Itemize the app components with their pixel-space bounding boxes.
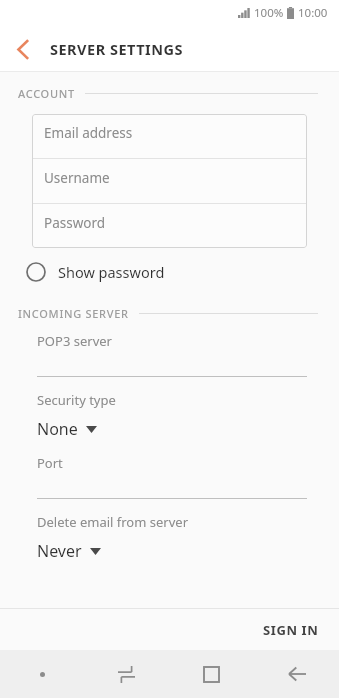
staticText: Email address (44, 124, 133, 142)
button[interactable]: POP3 server (37, 332, 307, 377)
button[interactable]: Password (32, 204, 307, 248)
staticText: Security type (37, 391, 116, 409)
button[interactable]: SIGN IN (243, 610, 339, 650)
button[interactable]: Email address (32, 114, 307, 158)
button[interactable]: Home (169, 650, 254, 698)
staticText: SIGN IN (263, 621, 319, 639)
button[interactable]: Recent apps (84, 650, 169, 698)
staticText: SERVER SETTINGS (50, 39, 183, 59)
button[interactable]: Security type (37, 391, 116, 440)
staticText: POP3 server (37, 332, 112, 350)
staticText: Show password (58, 262, 165, 282)
button[interactable]: Port (37, 454, 307, 499)
staticText: None (37, 418, 78, 440)
staticText: ACCOUNT (18, 86, 75, 101)
staticText: Never (37, 540, 82, 562)
staticText: Port (37, 454, 63, 472)
button[interactable]: Delete email from server (37, 513, 188, 562)
button[interactable]: Back (254, 650, 339, 698)
button[interactable]: Username (32, 159, 307, 203)
button[interactable]: Back (0, 26, 46, 72)
staticText: INCOMING SERVER (18, 306, 129, 321)
staticText: 10:00 (298, 5, 328, 21)
staticText: Username (44, 169, 110, 187)
staticText: 100% (254, 5, 284, 21)
staticText: Password (44, 214, 106, 232)
staticText: Delete email from server (37, 513, 188, 531)
button[interactable]: Show password (26, 255, 165, 289)
